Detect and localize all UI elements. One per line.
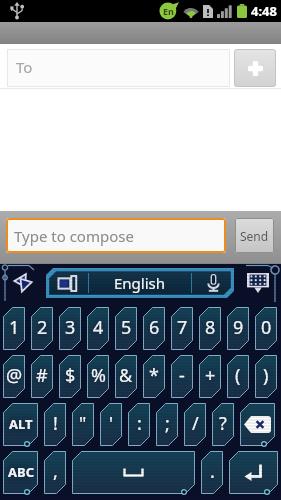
staticText: Send: [240, 228, 269, 244]
staticText: 3: [65, 315, 76, 340]
staticText: ;: [165, 411, 170, 436]
button[interactable]: English: [89, 268, 191, 298]
button[interactable]: Hide keyboard: [234, 264, 281, 301]
button[interactable]: 4: [87, 307, 109, 350]
button[interactable]: /: [184, 403, 206, 446]
button[interactable]: (: [227, 355, 249, 398]
staticText: :: [137, 411, 142, 436]
button[interactable]: 6: [143, 307, 165, 350]
button[interactable]: 5: [115, 307, 137, 350]
button[interactable]: Add recipient: [234, 49, 276, 87]
button[interactable]: Type to compose: [6, 218, 226, 253]
staticText: ,: [53, 459, 58, 484]
button[interactable]: Space: [72, 451, 195, 494]
button[interactable]: ;: [156, 403, 178, 446]
button[interactable]: ): [255, 355, 277, 398]
staticText: (: [235, 363, 241, 388]
button[interactable]: 1: [3, 307, 25, 350]
staticText: &: [119, 363, 133, 388]
staticText: 8: [205, 315, 216, 340]
staticText: .: [210, 459, 215, 484]
staticText: 2: [37, 315, 48, 340]
button[interactable]: Keyboard settings: [46, 268, 88, 298]
staticText: /: [192, 411, 199, 436]
staticText: Type to compose: [14, 226, 134, 246]
button[interactable]: %: [87, 355, 109, 398]
staticText: 0: [261, 315, 272, 340]
button[interactable]: @: [3, 355, 25, 398]
button[interactable]: $: [59, 355, 81, 398]
staticText: 9: [233, 315, 244, 340]
staticText: 5: [121, 315, 132, 340]
staticText: En: [163, 5, 174, 17]
staticText: @: [6, 363, 23, 388]
button[interactable]: 8: [199, 307, 221, 350]
button[interactable]: !: [44, 403, 66, 446]
button[interactable]: ': [100, 403, 122, 446]
staticText: +: [205, 363, 216, 388]
staticText: !: [53, 411, 58, 436]
button[interactable]: #: [31, 355, 53, 398]
button[interactable]: Enter: [229, 451, 278, 494]
button[interactable]: +: [199, 355, 221, 398]
staticText: English: [114, 273, 166, 293]
button[interactable]: To: [7, 49, 230, 87]
button[interactable]: 7: [171, 307, 193, 350]
button[interactable]: ,: [44, 451, 66, 494]
staticText: 6: [149, 315, 160, 340]
button[interactable]: 2: [31, 307, 53, 350]
button[interactable]: -: [171, 355, 193, 398]
button[interactable]: Delete: [240, 403, 275, 446]
staticText: 4: [93, 315, 104, 340]
staticText: ?: [219, 411, 227, 436]
staticText: %: [91, 363, 106, 388]
staticText: *: [149, 363, 159, 388]
button[interactable]: 3: [59, 307, 81, 350]
staticText: 7: [177, 315, 188, 340]
button[interactable]: :: [128, 403, 150, 446]
staticText: $: [65, 363, 76, 388]
button[interactable]: ALT: [3, 403, 38, 446]
button[interactable]: 0: [255, 307, 277, 350]
staticText: #: [36, 363, 48, 388]
staticText: -: [179, 363, 185, 388]
staticText: ": [79, 411, 87, 436]
button[interactable]: .: [201, 451, 223, 494]
button[interactable]: Previous input method: [0, 264, 46, 301]
staticText: ': [109, 411, 114, 436]
button[interactable]: ABC: [3, 451, 38, 494]
button[interactable]: ": [72, 403, 94, 446]
staticText: To: [16, 57, 33, 77]
staticText: ): [263, 363, 269, 388]
staticText: 4:48: [251, 2, 277, 20]
button[interactable]: *: [143, 355, 165, 398]
staticText: ALT: [9, 415, 33, 433]
button[interactable]: &: [115, 355, 137, 398]
staticText: 1: [9, 315, 20, 340]
button[interactable]: Voice input: [192, 268, 234, 298]
button[interactable]: Send: [235, 218, 274, 253]
button[interactable]: 9: [227, 307, 249, 350]
staticText: ABC: [8, 463, 34, 481]
button[interactable]: ?: [212, 403, 234, 446]
